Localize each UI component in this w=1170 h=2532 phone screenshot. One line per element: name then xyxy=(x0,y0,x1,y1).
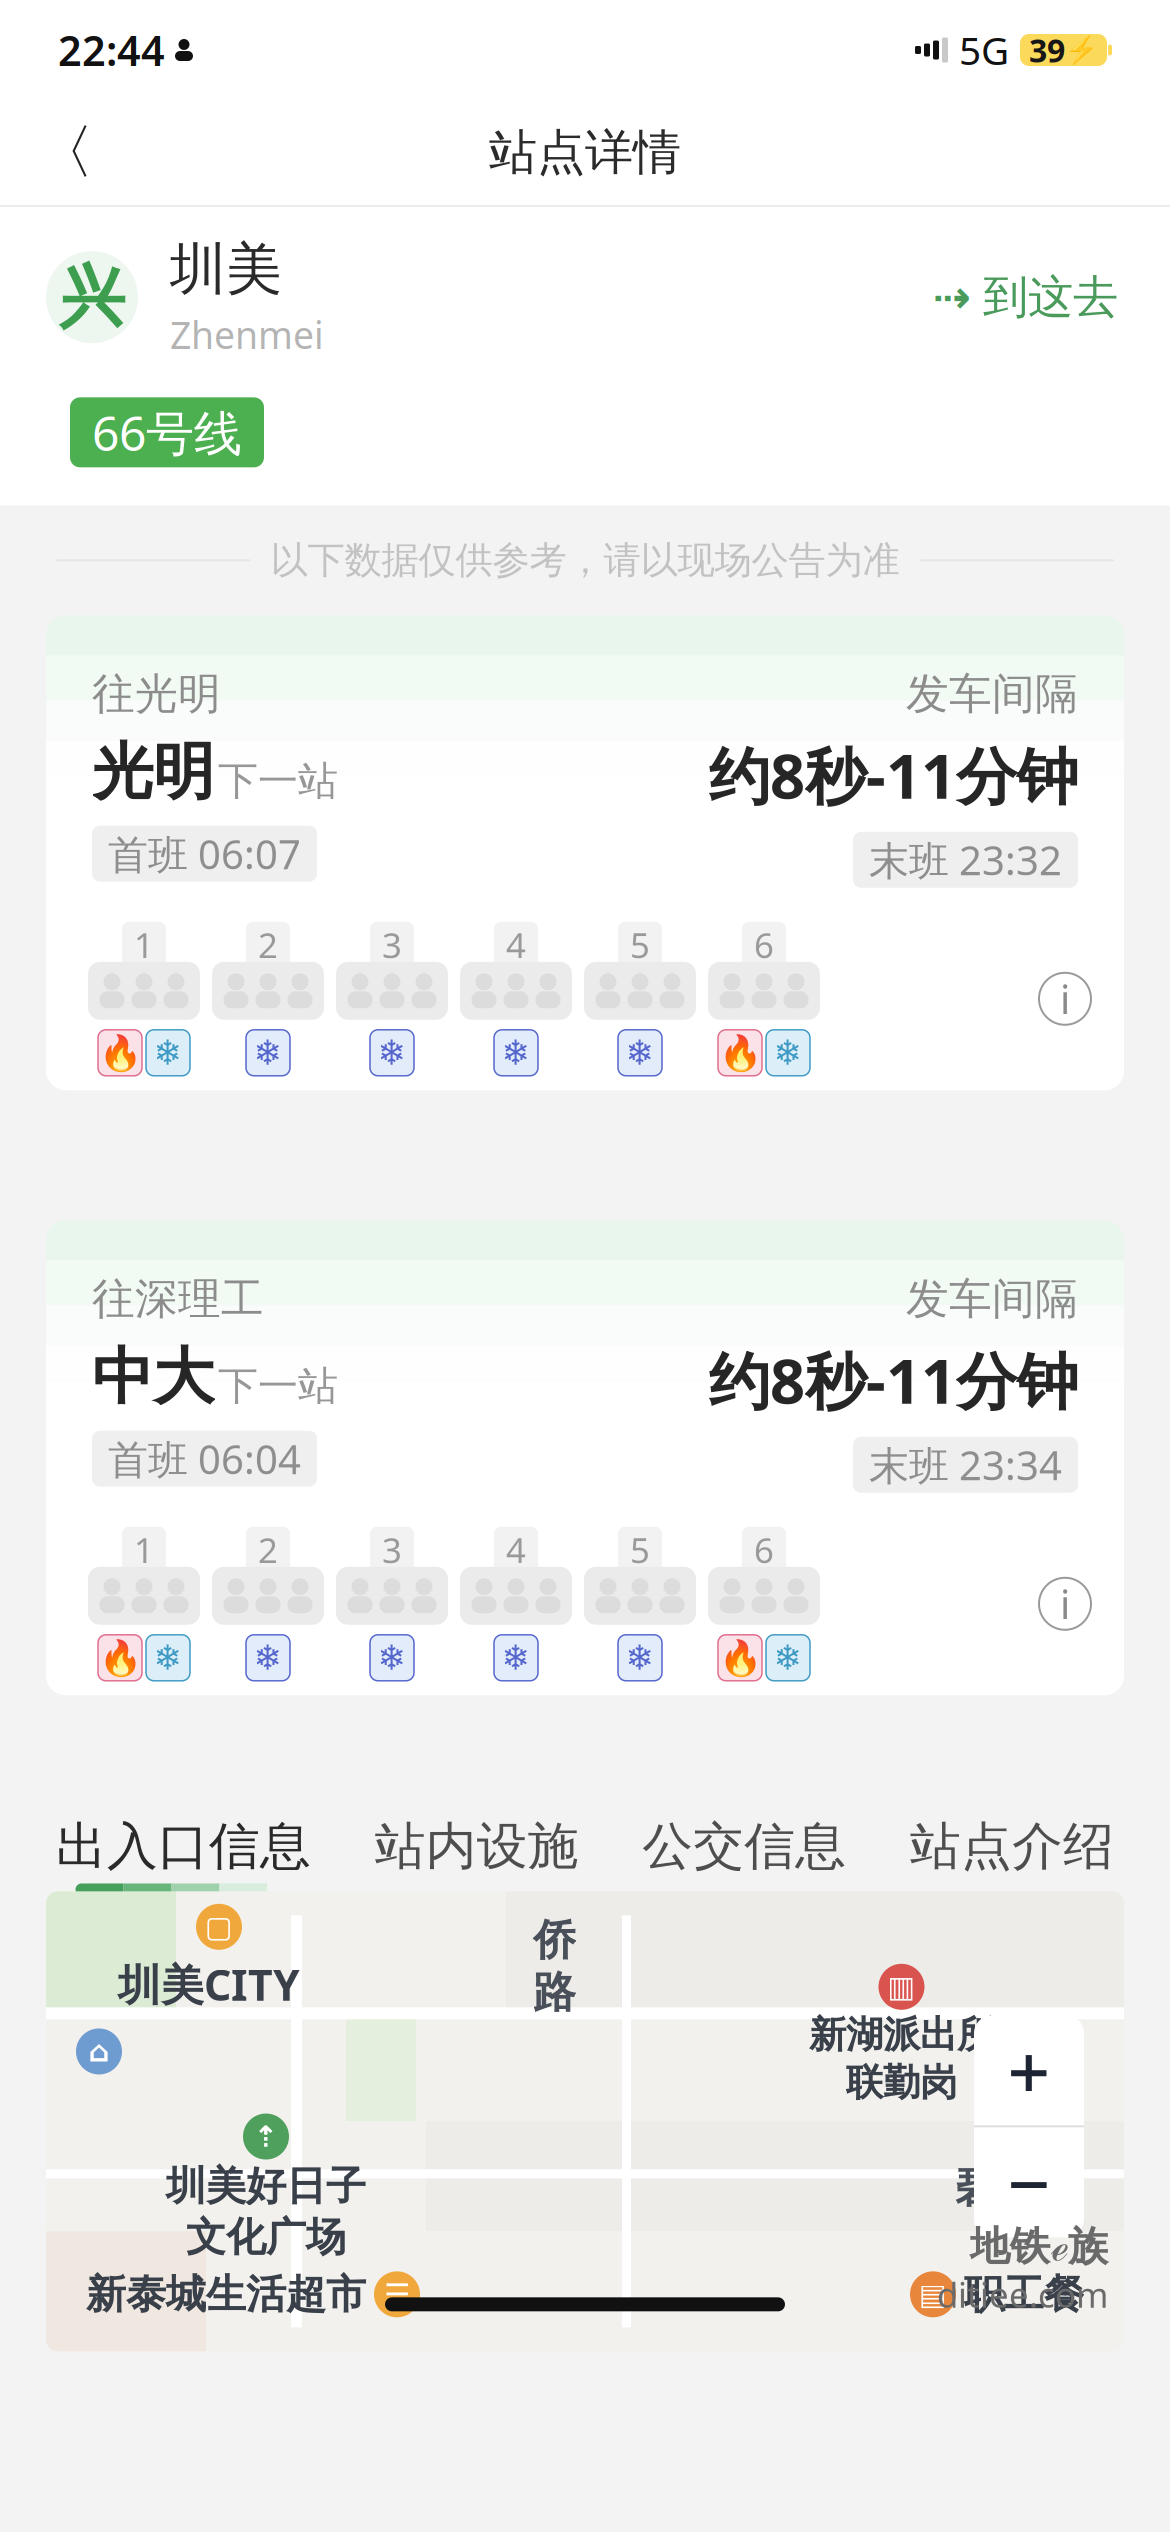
button[interactable]: 车厢信息说明 xyxy=(1030,1569,1100,1639)
staticText: 路 xyxy=(533,1966,576,2019)
staticText: ❄ xyxy=(153,1033,182,1072)
staticText: ⇢ xyxy=(933,271,971,323)
staticText: + xyxy=(1007,2021,1050,2120)
staticText: ❄ xyxy=(773,1638,802,1677)
staticText: 发车间隔 xyxy=(906,668,1078,720)
staticText: 1 xyxy=(134,1527,154,1573)
button[interactable]: ⇢ xyxy=(927,259,1124,335)
staticText: 往深理工 xyxy=(92,1273,264,1325)
staticText: 公交信息 xyxy=(642,1815,846,1877)
staticText: 首班 06:07 xyxy=(108,827,301,880)
staticText: 5 xyxy=(630,922,650,968)
staticText: 6 xyxy=(754,1527,774,1573)
staticText: ❄ xyxy=(377,1033,406,1072)
staticText: i xyxy=(1060,1577,1070,1630)
staticText: 🔥 xyxy=(98,1638,141,1678)
staticText: 66号线 xyxy=(92,400,242,464)
staticText: 🔥 xyxy=(98,1033,141,1073)
staticText: 兴 xyxy=(58,256,125,338)
staticText: 2 xyxy=(258,922,278,968)
staticText: 3 xyxy=(382,1527,402,1573)
staticText: 39 xyxy=(1029,29,1065,71)
staticText: 文化广场 xyxy=(186,2213,346,2262)
staticText: ▢ xyxy=(205,1910,233,1943)
staticText: ⇡ xyxy=(253,2120,278,2153)
staticText: 5 xyxy=(630,1527,650,1573)
staticText: i xyxy=(1060,972,1070,1025)
staticText: ❄ xyxy=(253,1638,282,1677)
staticText: ditiee.com xyxy=(937,2271,1108,2317)
staticText: ❄ xyxy=(773,1033,802,1072)
staticText: Zhenmei xyxy=(170,310,324,359)
staticText: 职工餐 xyxy=(964,2270,1084,2319)
staticText: ⚡ xyxy=(1065,35,1098,65)
staticText: 3 xyxy=(382,922,402,968)
staticText: 22:44 xyxy=(58,23,165,77)
staticText: 4 xyxy=(506,1527,526,1573)
staticText: 末班 23:32 xyxy=(869,833,1062,886)
staticText: 出入口信息 xyxy=(56,1815,311,1877)
staticText: ▤ xyxy=(919,2278,947,2311)
staticText: 站内设施 xyxy=(375,1815,579,1877)
staticText: ❄ xyxy=(625,1638,654,1677)
button[interactable]: 车厢信息说明 xyxy=(1030,964,1100,1034)
staticText: 圳美好日子 xyxy=(166,2161,366,2211)
button[interactable]: 缩小 xyxy=(974,2127,1084,2237)
staticText: 圳美CITY xyxy=(118,1956,300,2012)
staticText: 侨 xyxy=(533,1914,576,1966)
staticText: 新湖派出所 xyxy=(809,2012,994,2058)
staticText: 站点介绍 xyxy=(910,1815,1114,1877)
staticText: 新泰城生活超市 xyxy=(86,2270,366,2319)
staticText: ▥ xyxy=(887,1970,915,2003)
button[interactable]: 返回 xyxy=(20,107,110,197)
staticText: 往光明 xyxy=(92,668,221,720)
button[interactable]: 站内设施 xyxy=(375,1815,579,1895)
staticText: 光明 xyxy=(92,734,214,810)
staticText: 圳美 xyxy=(170,235,282,304)
staticText: 末班 23:34 xyxy=(869,1438,1062,1491)
staticText: ❄ xyxy=(153,1638,182,1677)
staticText: 到这去 xyxy=(983,269,1118,325)
staticText: ❄ xyxy=(625,1033,654,1072)
staticText: 🔥 xyxy=(718,1033,761,1073)
button[interactable]: 站点介绍 xyxy=(910,1815,1114,1895)
staticText: 约8秒-11分钟 xyxy=(709,1339,1078,1421)
staticText: 〈 xyxy=(35,116,94,189)
staticText: 首班 06:04 xyxy=(108,1432,301,1485)
staticText: ❄ xyxy=(501,1033,530,1072)
staticText: 碧龙路 xyxy=(955,2161,1084,2214)
staticText: 中大 xyxy=(92,1339,214,1415)
button[interactable]: 66号线 xyxy=(70,397,264,467)
staticText: 站点详情 xyxy=(489,123,681,182)
staticText: 约8秒-11分钟 xyxy=(709,734,1078,816)
staticText: 4 xyxy=(506,922,526,968)
button[interactable]: 出入口信息 xyxy=(56,1815,311,1895)
staticText: 6 xyxy=(754,922,774,968)
staticText: 下一站 xyxy=(218,756,338,806)
staticText: 1 xyxy=(134,922,154,968)
staticText: 下一站 xyxy=(218,1361,338,1411)
button[interactable]: 放大 xyxy=(974,2015,1084,2125)
staticText: 以下数据仅供参考，请以现场公告为准 xyxy=(270,537,899,583)
staticText: ❄ xyxy=(253,1033,282,1072)
staticText: 2 xyxy=(258,1527,278,1573)
staticText: − xyxy=(1007,2133,1050,2232)
staticText: 地铁ℯ族 xyxy=(970,2218,1108,2271)
staticText: 5G xyxy=(959,24,1009,76)
staticText: ☰ xyxy=(384,2278,410,2311)
staticText: ❄ xyxy=(377,1638,406,1677)
staticText: 🔥 xyxy=(718,1638,761,1678)
staticText: ⌂ xyxy=(88,2035,109,2068)
button[interactable]: 公交信息 xyxy=(642,1815,846,1895)
staticText: 发车间隔 xyxy=(906,1273,1078,1325)
staticText: 联勤岗 xyxy=(846,2060,957,2106)
staticText: ❄ xyxy=(501,1638,530,1677)
